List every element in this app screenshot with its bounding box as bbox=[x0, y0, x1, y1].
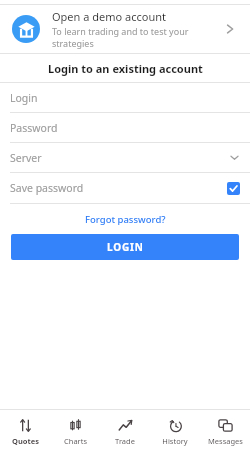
staticText: Trade bbox=[115, 436, 135, 446]
button[interactable]: Forgot password? bbox=[79, 209, 172, 230]
button[interactable]: Save password bbox=[0, 173, 250, 203]
button[interactable]: Password bbox=[0, 113, 250, 142]
button[interactable]: Open a demo account bbox=[0, 5, 250, 53]
other: Open demo account bbox=[220, 19, 240, 39]
button[interactable]: Messages bbox=[200, 410, 250, 454]
button[interactable]: LOGIN bbox=[11, 234, 239, 260]
staticText: Open a demo account bbox=[52, 9, 166, 24]
staticText: Login bbox=[10, 91, 38, 105]
staticText: Save password bbox=[10, 181, 84, 195]
staticText: Server bbox=[10, 151, 42, 165]
staticText: Messages bbox=[208, 436, 243, 446]
button[interactable]: Login bbox=[0, 83, 250, 112]
button[interactable]: Trade bbox=[100, 410, 150, 454]
staticText: History bbox=[162, 436, 188, 446]
button[interactable]: Charts bbox=[50, 410, 100, 454]
staticText: Password bbox=[10, 121, 58, 135]
button[interactable]: Quotes bbox=[0, 410, 50, 454]
button[interactable]: Server bbox=[0, 143, 250, 172]
staticText: Quotes bbox=[12, 436, 39, 446]
staticText: Forgot password? bbox=[85, 213, 166, 226]
staticText: Login to an existing account bbox=[48, 61, 203, 76]
staticText: To learn trading and to test your strate… bbox=[52, 25, 220, 49]
staticText: LOGIN bbox=[107, 240, 144, 254]
staticText: Charts bbox=[64, 436, 87, 446]
button[interactable]: History bbox=[150, 410, 200, 454]
